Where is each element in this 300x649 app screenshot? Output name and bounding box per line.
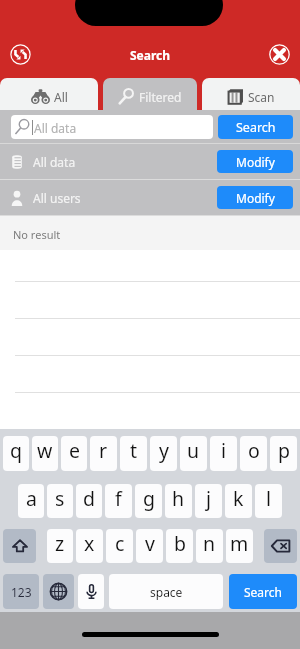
staticText: g (143, 485, 155, 512)
staticText: z (55, 530, 65, 557)
button[interactable]: g (135, 484, 162, 518)
button[interactable]: t (120, 436, 147, 471)
button[interactable]: o (240, 436, 267, 471)
staticText: n (203, 530, 216, 557)
button[interactable]: All data (11, 115, 213, 139)
button[interactable]: Sync (6, 40, 35, 69)
staticText: a (26, 485, 37, 512)
staticText: t (130, 437, 138, 464)
staticText: h (172, 485, 185, 512)
staticText: m (230, 530, 249, 557)
button[interactable]: w (32, 436, 58, 471)
button[interactable]: Scan (202, 78, 300, 110)
staticText: c (115, 530, 125, 557)
staticText: 123 (11, 584, 32, 600)
button[interactable]: s (47, 484, 73, 518)
button[interactable]: a (18, 484, 44, 518)
button[interactable]: Modify (217, 186, 293, 209)
staticText: v (145, 530, 155, 557)
staticText: u (187, 437, 200, 464)
staticText: i (221, 437, 227, 464)
staticText: k (233, 485, 244, 512)
button[interactable]: Modify (217, 150, 293, 173)
staticText: All data (34, 120, 77, 136)
button[interactable]: k (225, 484, 252, 518)
button[interactable]: m (226, 529, 253, 563)
button[interactable]: q (3, 436, 29, 471)
staticText: o (248, 437, 260, 464)
staticText: Modify (236, 154, 275, 170)
button[interactable]: c (106, 529, 133, 563)
button[interactable]: h (165, 484, 192, 518)
staticText: p (278, 437, 290, 464)
staticText: All data (33, 154, 76, 170)
button[interactable]: u (180, 436, 207, 471)
staticText: e (69, 437, 80, 464)
staticText: b (174, 530, 186, 557)
staticText: x (84, 530, 95, 557)
staticText: y (159, 437, 169, 464)
button[interactable]: space (109, 574, 223, 609)
button[interactable]: Backspace (264, 529, 297, 563)
staticText: l (266, 485, 272, 512)
button[interactable]: x (76, 529, 103, 563)
staticText: q (10, 437, 22, 464)
button[interactable]: Search (218, 115, 293, 139)
staticText: j (206, 485, 212, 512)
button[interactable]: l (255, 484, 282, 518)
button[interactable]: Dictate (78, 574, 104, 609)
button[interactable]: Change language (43, 574, 74, 609)
staticText: space (150, 584, 183, 600)
button[interactable]: e (61, 436, 87, 471)
staticText: Search (130, 47, 171, 63)
button[interactable]: Close (265, 40, 294, 69)
staticText: Search (244, 584, 282, 600)
staticText: f (115, 485, 122, 512)
button[interactable]: v (136, 529, 163, 563)
button[interactable]: f (105, 484, 132, 518)
button[interactable]: All (0, 78, 98, 110)
button[interactable]: r (90, 436, 117, 471)
button[interactable]: n (196, 529, 223, 563)
staticText: Scan (248, 89, 275, 105)
staticText: Modify (236, 190, 275, 206)
staticText: Filtered (139, 89, 182, 105)
button[interactable]: p (270, 436, 297, 471)
button[interactable]: j (195, 484, 222, 518)
staticText: Search (236, 119, 276, 136)
staticText: All (54, 89, 68, 105)
staticText: w (37, 437, 53, 464)
button[interactable]: Numbers (3, 574, 39, 609)
button[interactable]: d (76, 484, 102, 518)
button[interactable]: b (166, 529, 193, 563)
staticText: s (55, 485, 65, 512)
staticText: d (83, 485, 95, 512)
button[interactable]: Shift (3, 529, 36, 563)
button[interactable]: Filtered (103, 78, 197, 110)
staticText: All users (33, 190, 81, 206)
button[interactable]: Search (229, 574, 297, 609)
button[interactable]: y (150, 436, 177, 471)
staticText: No result (13, 227, 61, 242)
button[interactable]: i (210, 436, 237, 471)
button[interactable]: z (47, 529, 73, 563)
staticText: r (99, 437, 108, 464)
